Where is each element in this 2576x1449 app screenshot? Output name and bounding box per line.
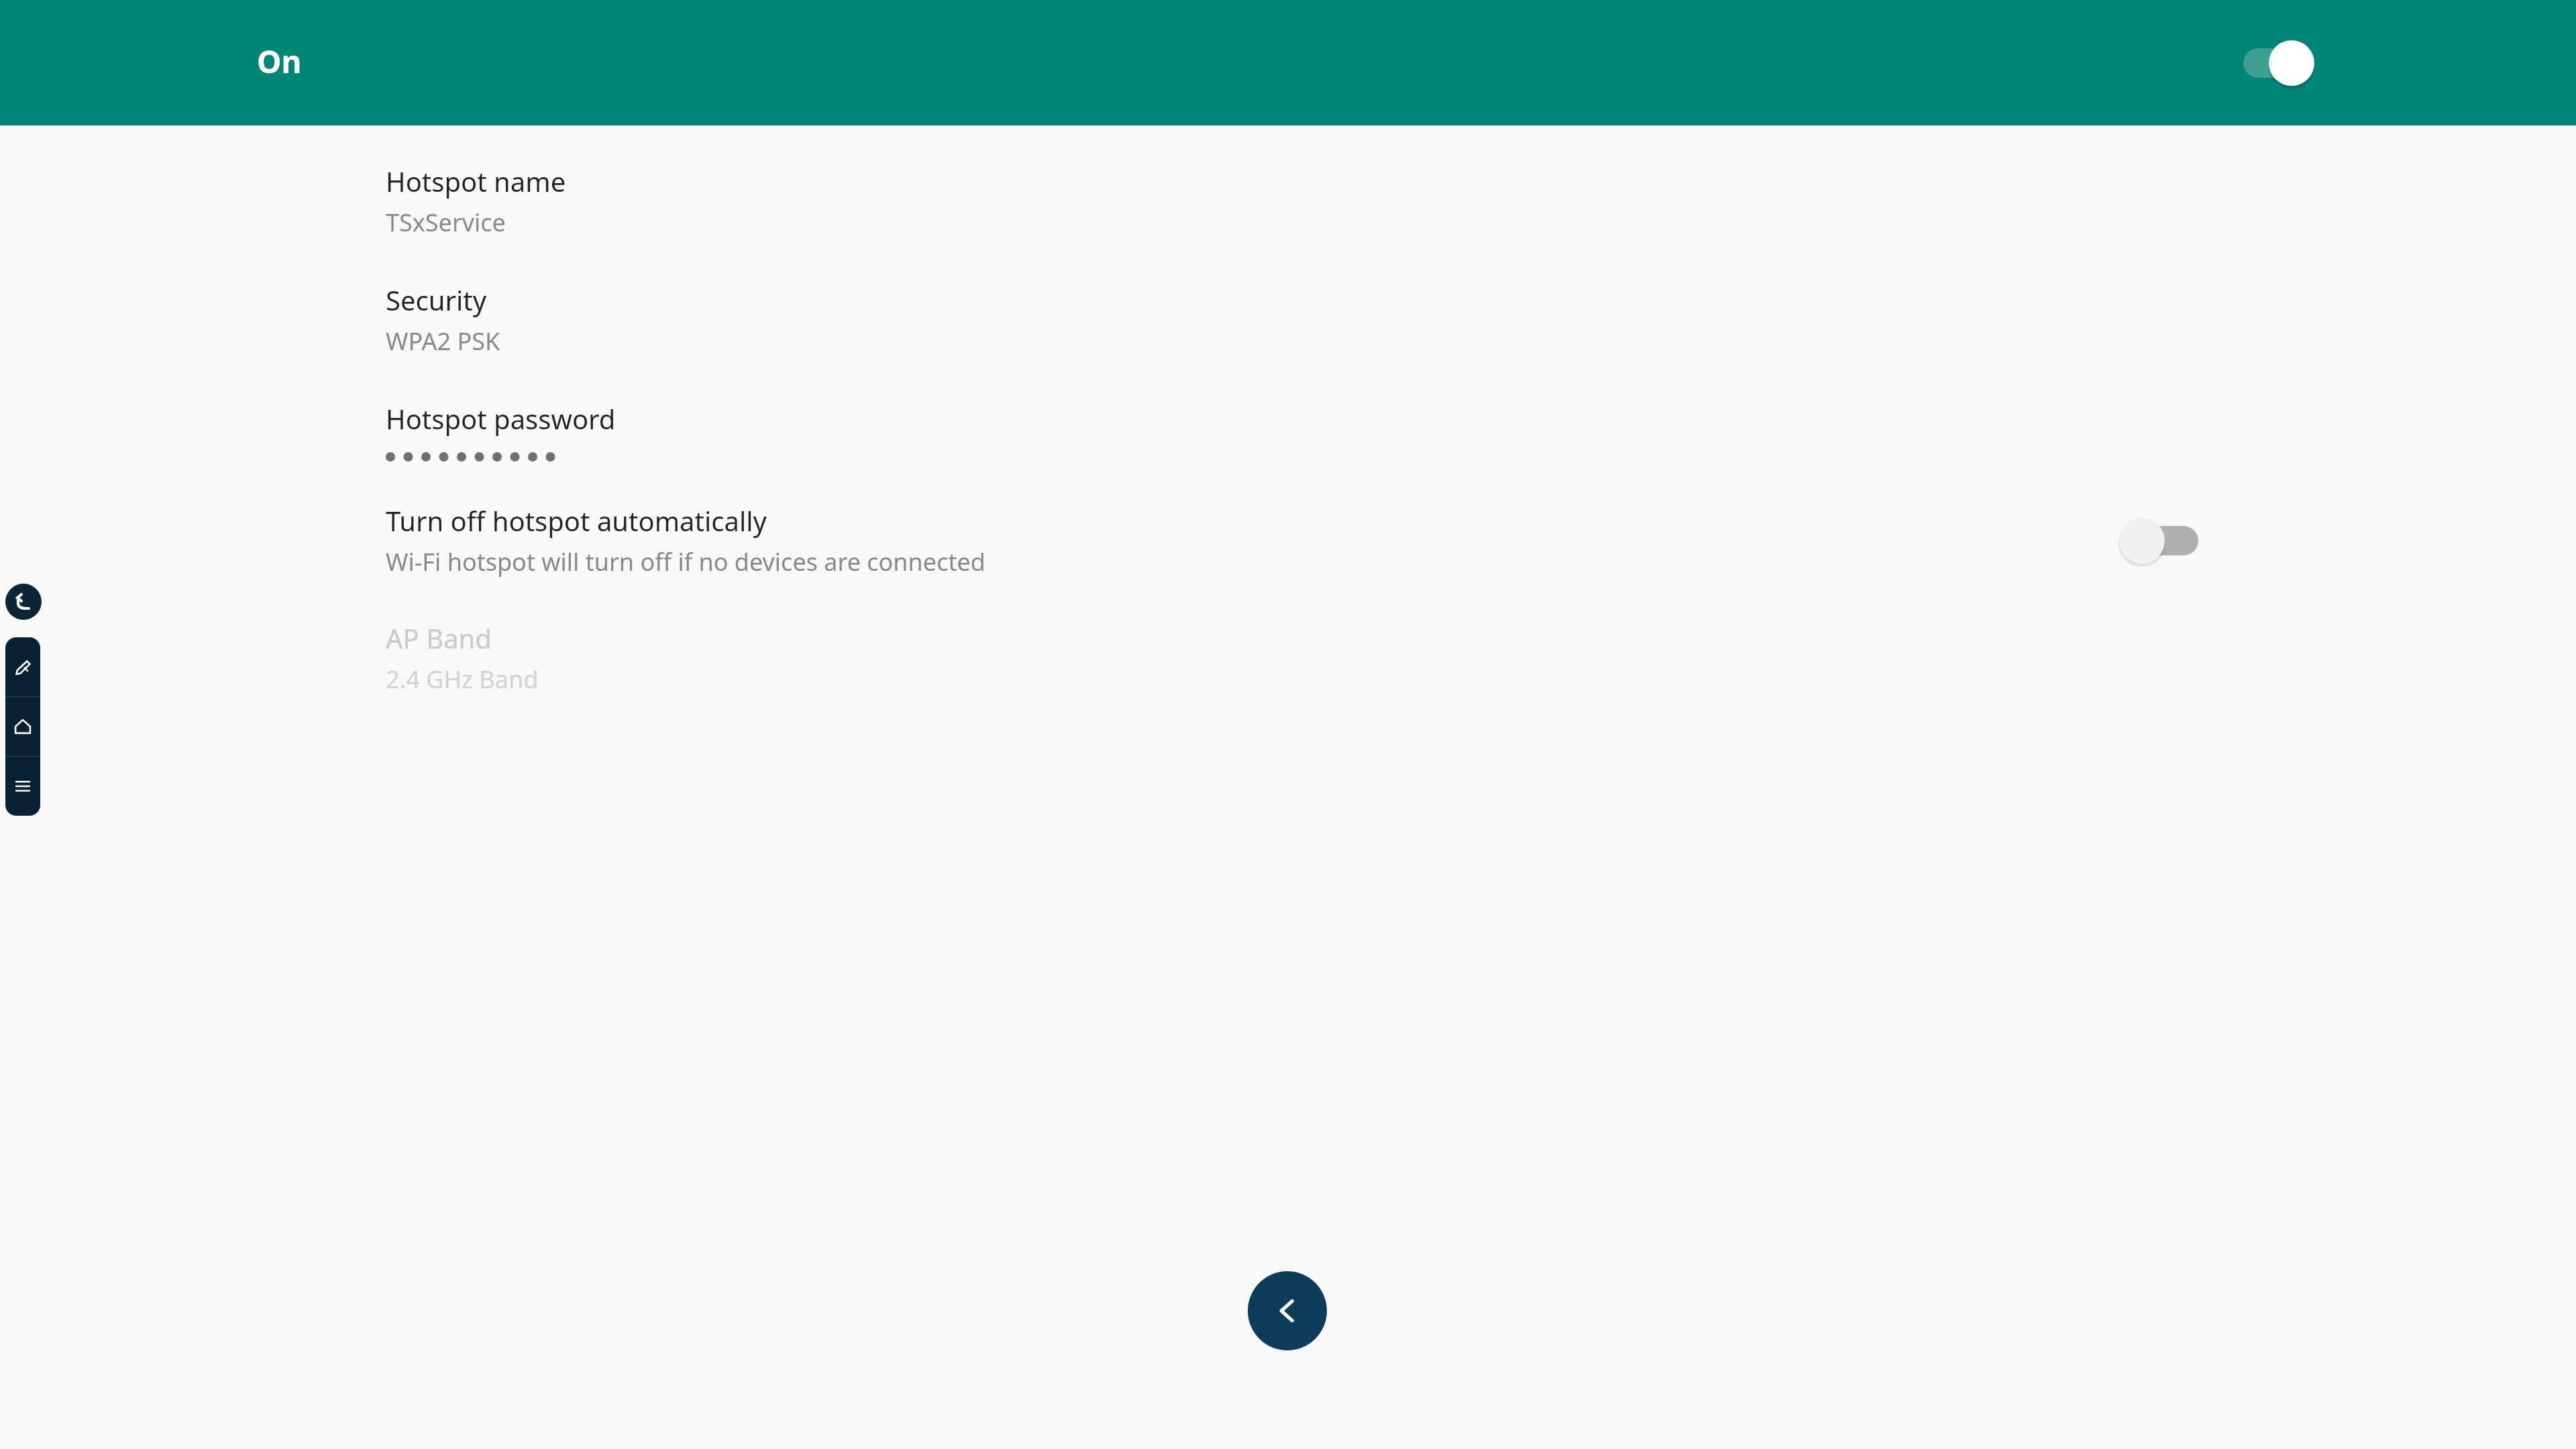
- staticText: Security: [386, 282, 487, 318]
- button[interactable]: Edit: [5, 637, 40, 696]
- button[interactable]: Security: [0, 239, 2576, 358]
- staticText: AP Band: [386, 620, 492, 656]
- button[interactable]: Turn off hotspot automatically: [0, 465, 2576, 578]
- button[interactable]: Back: [1248, 1271, 1327, 1350]
- staticText: 2.4 GHz Band: [386, 663, 539, 696]
- button[interactable]: Undo: [5, 584, 42, 620]
- staticText: TSxService: [386, 206, 506, 239]
- staticText: Wi-Fi hotspot will turn off if no device…: [386, 545, 985, 578]
- staticText: On: [257, 40, 302, 83]
- staticText: Turn off hotspot automatically: [386, 502, 767, 539]
- button[interactable]: Menu: [5, 757, 40, 816]
- staticText: WPA2 PSK: [386, 325, 500, 358]
- staticText: Hotspot password: [386, 400, 616, 437]
- button[interactable]: Hotspot name: [0, 125, 2576, 239]
- button[interactable]: Hotspot password: [0, 358, 2576, 465]
- staticText: Hotspot name: [386, 163, 566, 199]
- button[interactable]: AP Band: [0, 578, 2576, 696]
- button[interactable]: Hotspot on/off: [2234, 31, 2321, 95]
- button[interactable]: Home: [5, 697, 40, 756]
- button[interactable]: Turn off hotspot automatically: [2112, 508, 2200, 573]
